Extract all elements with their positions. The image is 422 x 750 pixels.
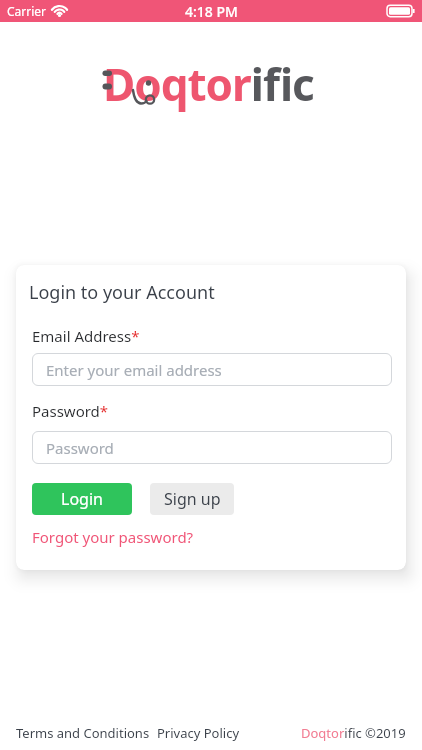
staticText: Login to your Account <box>29 280 215 305</box>
staticText: Email Address* <box>32 326 140 346</box>
staticText: 4:18 PM <box>185 2 238 21</box>
button[interactable]: Doqtorific ©2019 <box>301 724 406 742</box>
staticText: Password <box>46 438 114 458</box>
staticText: Sign up <box>164 488 221 510</box>
staticText: Enter your email address <box>46 360 222 380</box>
button[interactable]: Forgot your password? <box>32 527 194 547</box>
button[interactable]: Login <box>32 483 132 515</box>
button[interactable]: Privacy Policy <box>157 724 240 742</box>
staticText: Login <box>61 488 103 510</box>
button[interactable]: Password <box>32 431 392 464</box>
button[interactable]: Enter your email address <box>32 353 392 386</box>
button[interactable]: Sign up <box>150 483 234 515</box>
staticText: Doqtorific <box>103 54 314 114</box>
button[interactable]: Terms and Conditions <box>16 724 150 742</box>
staticText: Password* <box>32 401 109 421</box>
staticText: Carrier <box>7 3 47 19</box>
